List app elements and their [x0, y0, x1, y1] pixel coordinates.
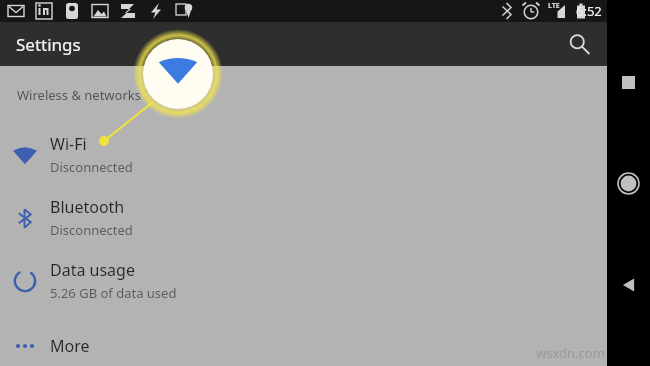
- staticText: Wi-Fi: [50, 133, 87, 155]
- button[interactable]: Home: [607, 161, 650, 205]
- staticText: Disconnected: [50, 221, 133, 239]
- staticText: Data usage: [50, 259, 135, 281]
- staticText: 5.26 GB of data used: [50, 284, 177, 302]
- staticText: Wireless & networks: [17, 86, 141, 104]
- button[interactable]: Search: [559, 24, 599, 64]
- staticText: Disconnected: [50, 158, 133, 176]
- button[interactable]: Wi-Fi: [0, 123, 607, 186]
- staticText: Settings: [16, 33, 81, 56]
- button[interactable]: Data usage: [0, 249, 607, 312]
- staticText: 6:52: [576, 2, 602, 20]
- staticText: More: [50, 335, 90, 357]
- button[interactable]: Recents: [607, 60, 650, 104]
- staticText: wsxdn.com: [536, 344, 605, 362]
- button[interactable]: More: [0, 326, 607, 366]
- button[interactable]: Bluetooth: [0, 186, 607, 249]
- staticText: Bluetooth: [50, 196, 125, 218]
- staticText: LTE: [548, 1, 560, 11]
- button[interactable]: Back: [607, 263, 650, 307]
